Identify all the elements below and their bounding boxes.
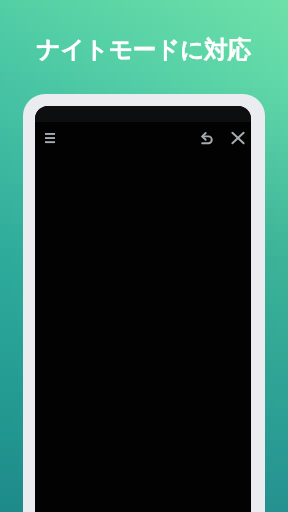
button[interactable] (193, 124, 221, 152)
staticText: ナイトモードに対応 (36, 35, 251, 65)
button[interactable] (224, 124, 251, 152)
button[interactable] (36, 124, 64, 152)
